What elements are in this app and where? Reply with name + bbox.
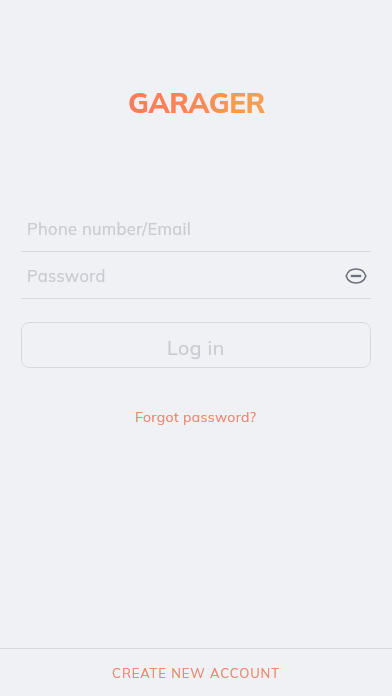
button[interactable]: Phone number/Email	[21, 205, 371, 251]
staticText: Phone number/Email	[27, 218, 192, 239]
staticText: GARAGER	[128, 85, 265, 120]
staticText: CREATE NEW ACCOUNT	[112, 665, 280, 681]
staticText: Log in	[167, 335, 225, 359]
staticText: Forgot password?	[135, 408, 257, 426]
staticText: Password	[27, 265, 106, 286]
button[interactable]: Show password	[339, 259, 373, 293]
button[interactable]: Forgot password?	[127, 404, 265, 430]
button[interactable]: Log in	[21, 322, 371, 368]
button[interactable]: CREATE NEW ACCOUNT	[0, 649, 392, 696]
button[interactable]: Password	[21, 252, 371, 298]
